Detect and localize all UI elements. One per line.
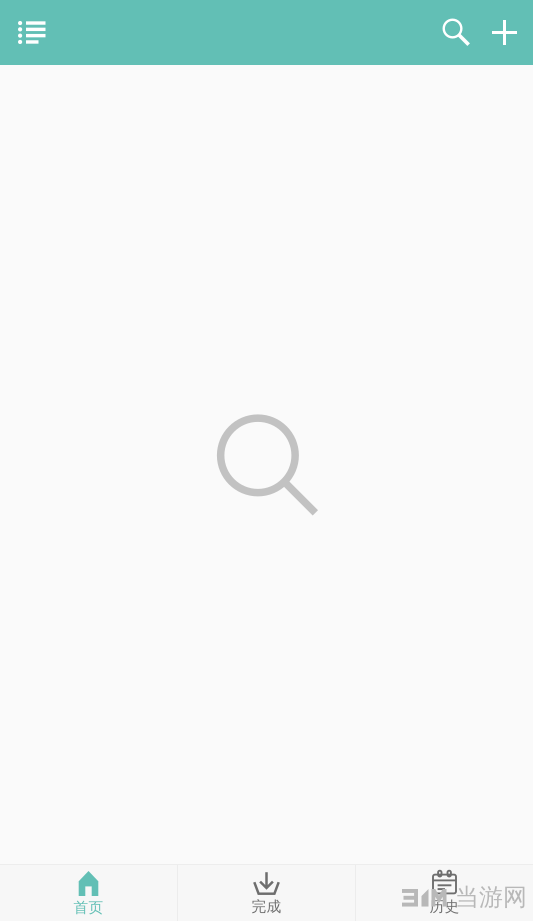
button[interactable]: 完成 bbox=[178, 865, 355, 921]
staticText: 当游网 bbox=[455, 882, 527, 912]
button[interactable]: Menu bbox=[0, 0, 55, 65]
staticText: 完成 bbox=[251, 897, 281, 915]
button[interactable]: Search bbox=[428, 0, 480, 65]
staticText: 首页 bbox=[73, 898, 103, 916]
button[interactable]: 历史 bbox=[356, 865, 533, 921]
staticText: 历史 bbox=[429, 897, 459, 915]
button[interactable]: Add bbox=[480, 0, 533, 65]
button[interactable]: 首页 bbox=[0, 865, 177, 921]
